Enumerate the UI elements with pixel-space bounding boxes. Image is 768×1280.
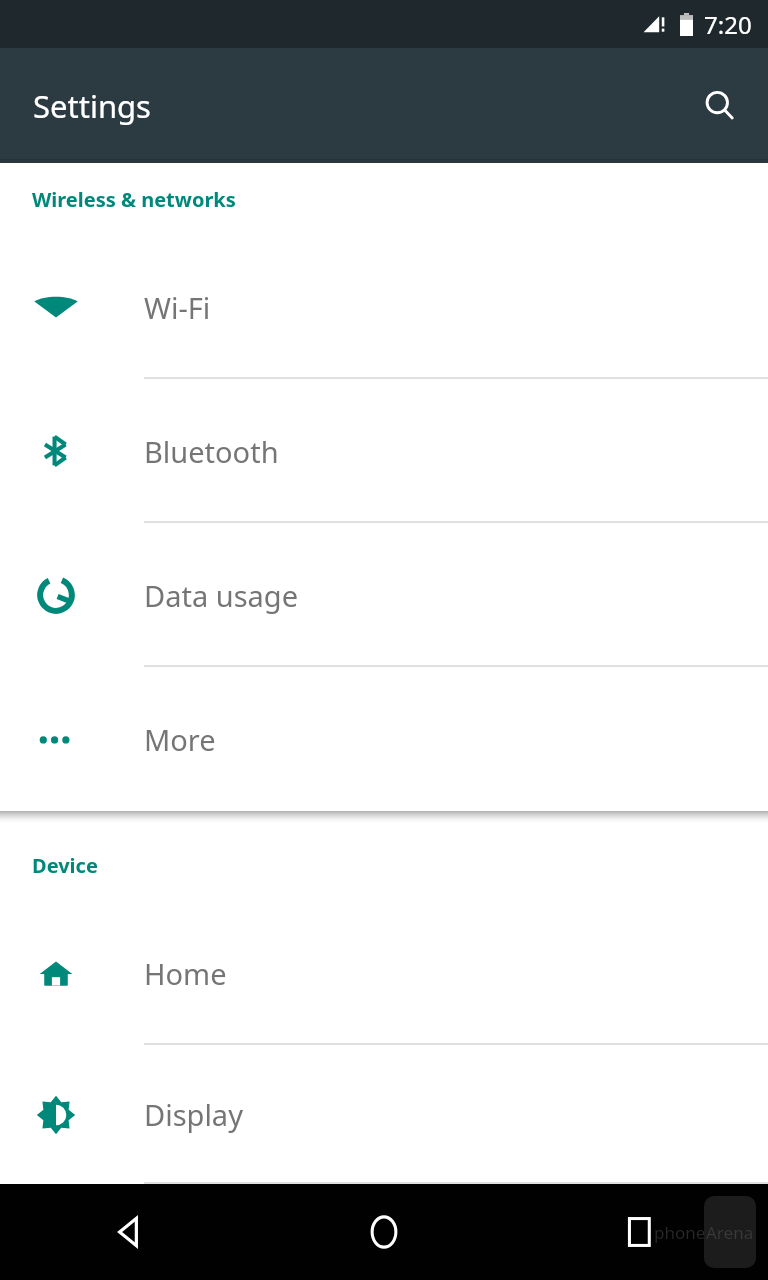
staticText: Settings — [33, 85, 151, 127]
staticText: Wi-Fi — [144, 288, 211, 327]
button[interactable]: Search — [692, 78, 748, 134]
staticText: Arena — [706, 1221, 754, 1244]
button[interactable]: Recents — [512, 1184, 768, 1280]
staticText: Data usage — [144, 576, 298, 615]
staticText: More — [144, 720, 216, 759]
staticText: Bluetooth — [144, 432, 279, 471]
staticText: Display — [144, 1095, 243, 1134]
staticText: phone — [654, 1221, 706, 1244]
button[interactable]: Wi-Fi — [0, 235, 768, 379]
button[interactable]: Display — [0, 1045, 768, 1184]
button[interactable]: Data usage — [0, 523, 768, 667]
button[interactable]: Bluetooth — [0, 379, 768, 523]
staticText: Device — [32, 852, 98, 879]
staticText: 7:20 — [704, 8, 752, 41]
button[interactable]: Home — [0, 901, 768, 1045]
button[interactable]: More — [0, 667, 768, 811]
staticText: Wireless & networks — [32, 186, 236, 213]
staticText: Home — [144, 954, 227, 993]
button[interactable]: Back — [0, 1184, 256, 1280]
button[interactable]: Home — [256, 1184, 512, 1280]
